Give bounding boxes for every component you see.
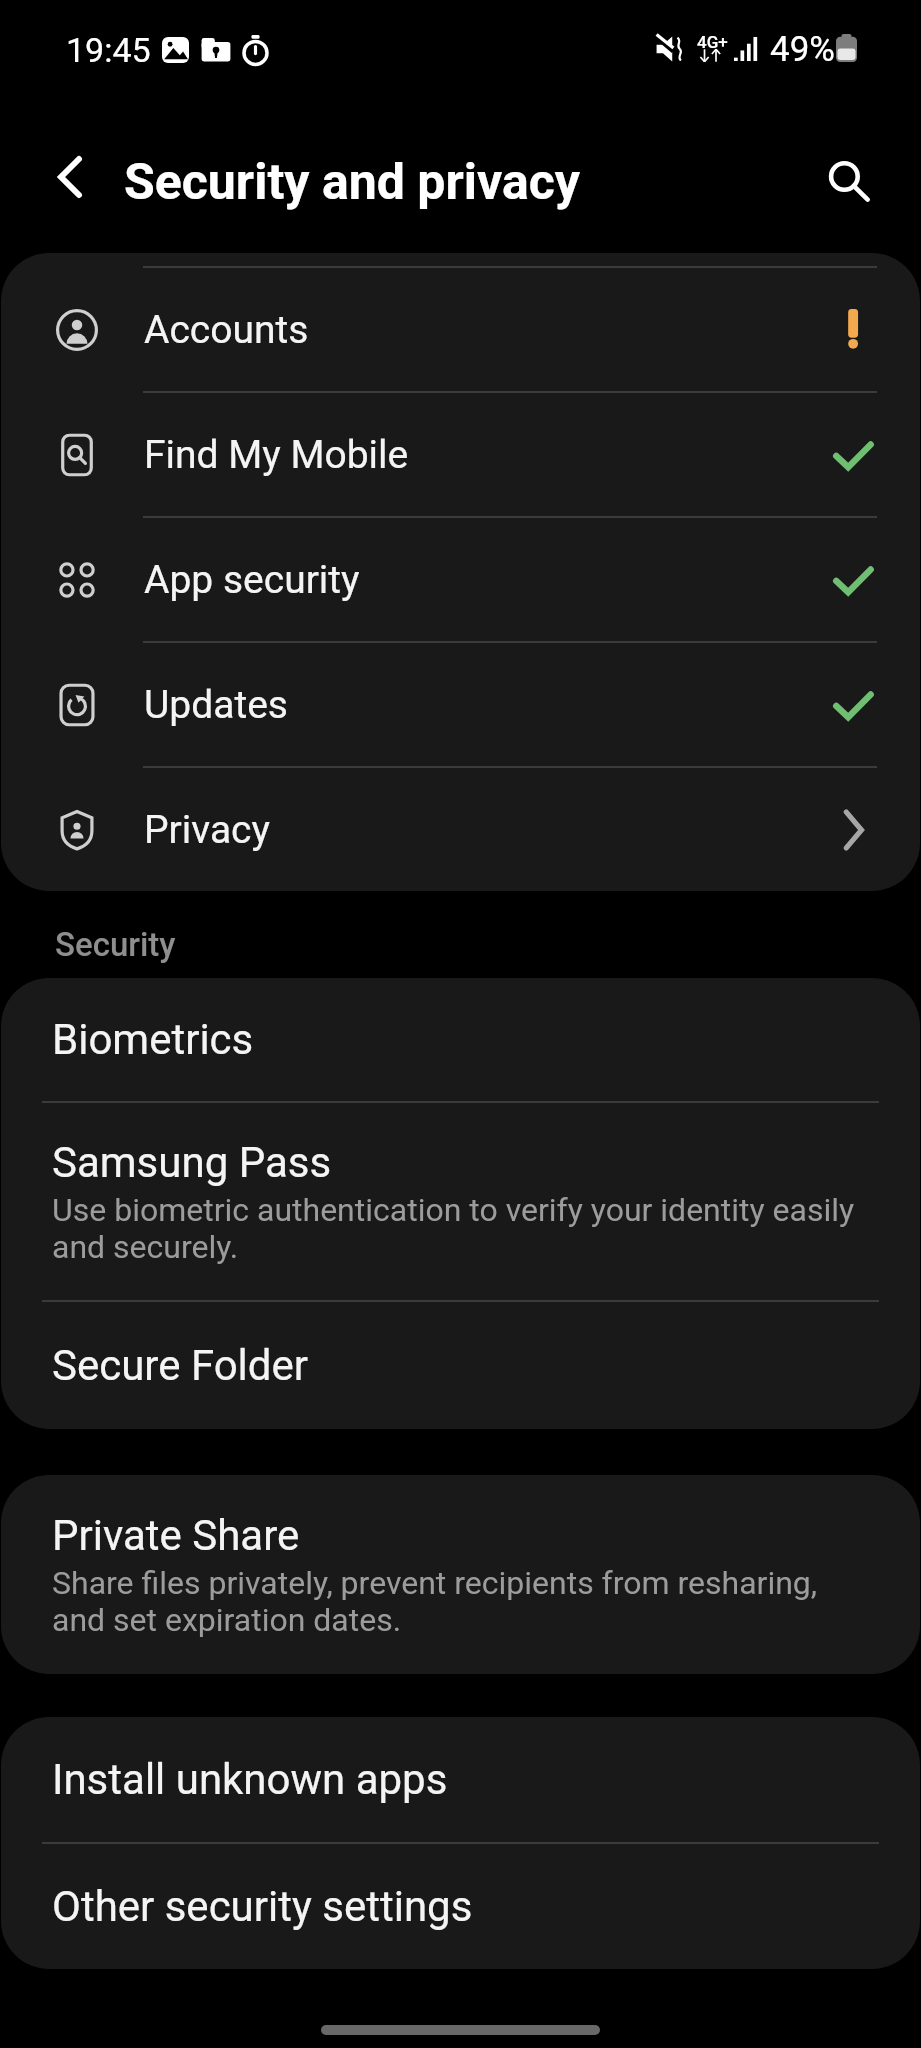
staticText: Samsung Pass — [52, 1138, 332, 1187]
staticText: Private Share — [52, 1511, 300, 1560]
button[interactable]: Updates — [1, 643, 920, 766]
staticText: Find My Mobile — [144, 432, 409, 478]
staticText: Biometrics — [52, 1015, 254, 1064]
staticText: Secure Folder — [52, 1341, 309, 1390]
staticText: Updates — [144, 682, 288, 728]
staticText: Other security settings — [52, 1882, 473, 1931]
button[interactable]: Back — [30, 137, 110, 217]
staticText: Privacy — [144, 807, 270, 853]
button[interactable]: Find My Mobile — [1, 393, 920, 516]
staticText: Install unknown apps — [52, 1755, 448, 1804]
button[interactable]: Biometrics — [1, 978, 920, 1101]
button[interactable]: Other security settings — [1, 1844, 920, 1969]
staticText: Use biometric authentication to verify y… — [52, 1192, 871, 1266]
staticText: 4G+ — [697, 32, 728, 52]
staticText: Security and privacy — [124, 153, 580, 212]
button[interactable]: Privacy — [1, 768, 920, 891]
staticText: App security — [144, 557, 360, 603]
staticText: Accounts — [144, 307, 309, 353]
button[interactable]: Private Share — [1, 1475, 920, 1674]
button[interactable]: App security — [1, 518, 920, 641]
staticText: 49% — [770, 26, 835, 70]
button[interactable]: Accounts — [1, 268, 920, 391]
button[interactable]: Samsung Pass — [1, 1103, 920, 1300]
staticText: Security — [55, 927, 176, 963]
button[interactable]: Secure Folder — [1, 1302, 920, 1429]
staticText: 19:45 — [66, 27, 151, 71]
button[interactable]: Install unknown apps — [1, 1717, 920, 1842]
staticText: Share files privately, prevent recipient… — [52, 1565, 871, 1639]
button[interactable]: Search — [808, 137, 888, 217]
